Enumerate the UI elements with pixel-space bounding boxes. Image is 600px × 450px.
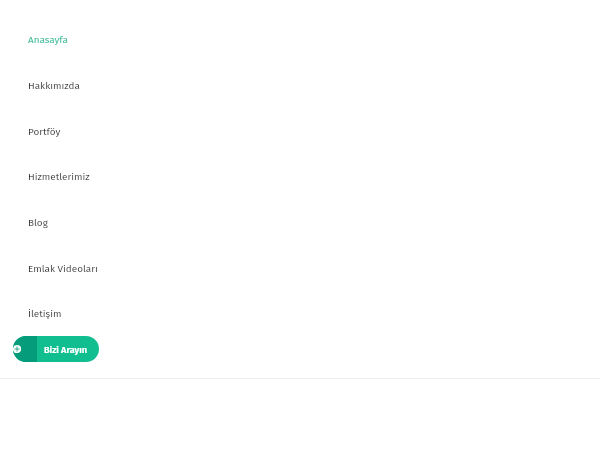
staticText: Emlak Videoları bbox=[28, 263, 98, 275]
button[interactable]: Bizi Arayın bbox=[13, 336, 99, 362]
staticText: İletişim bbox=[28, 308, 62, 320]
button[interactable]: Blog bbox=[0, 200, 600, 246]
staticText: Portföy bbox=[28, 126, 61, 138]
button[interactable]: İletişim bbox=[0, 291, 600, 337]
button[interactable]: Portföy bbox=[0, 109, 600, 155]
button[interactable]: Hizmetlerimiz bbox=[0, 154, 600, 200]
staticText: Blog bbox=[28, 217, 48, 229]
button[interactable]: Hakkımızda bbox=[0, 63, 600, 109]
staticText: Hakkımızda bbox=[28, 80, 80, 92]
button[interactable]: Anasayfa bbox=[0, 17, 600, 63]
staticText: Hizmetlerimiz bbox=[28, 171, 90, 183]
staticText: Anasayfa bbox=[28, 34, 68, 46]
staticText: Bizi Arayın bbox=[44, 344, 88, 355]
button[interactable]: Emlak Videoları bbox=[0, 246, 600, 292]
